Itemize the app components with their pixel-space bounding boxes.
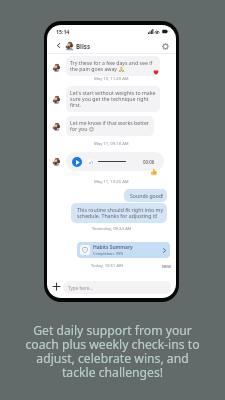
staticText: May 10, 11:49 AM [94, 76, 129, 82]
staticText: Try these for a few days and see if the … [70, 59, 157, 73]
button[interactable]: Add attachment [51, 281, 62, 292]
staticText: Sounds good! [130, 192, 164, 199]
button[interactable]: This routine should fit right into my sc… [71, 203, 167, 223]
button[interactable]: Sounds good! [124, 189, 167, 202]
button[interactable]: Type here... [63, 281, 171, 294]
staticText: Get daily support from your coach plus w… [23, 322, 202, 381]
button[interactable]: Back [54, 41, 63, 50]
staticText: May 11, 09:18 AM [94, 141, 129, 147]
staticText: May 11, 10:25 AM [94, 179, 129, 185]
staticText: Bliss [76, 42, 91, 50]
staticText: Let's start without weights to make sure… [70, 89, 157, 109]
staticText: Today, 10:51 AM [91, 263, 123, 269]
button[interactable]: Try these for a few days and see if the … [66, 56, 160, 76]
button[interactable]: Settings [160, 41, 170, 51]
staticText: Type here... [68, 285, 93, 291]
staticText: 00:06 [143, 159, 155, 165]
staticText: NEW [162, 264, 171, 269]
staticText: Habits Summary [93, 244, 133, 251]
staticText: Let me know if that works better for you… [70, 119, 151, 133]
staticText: x1 [89, 160, 93, 165]
button[interactable]: Habits Summary [77, 242, 170, 258]
staticText: Yesterday, 09:24 AM [92, 226, 132, 232]
staticText: 15:14 [56, 28, 70, 35]
button[interactable]: Let me know if that works better for you… [66, 116, 154, 136]
staticText: Completion: 99% [93, 251, 124, 256]
staticText: This routine should fit right into my sc… [77, 206, 164, 220]
button[interactable]: x1 [66, 152, 164, 171]
button[interactable]: Let's start without weights to make sure… [66, 86, 160, 112]
